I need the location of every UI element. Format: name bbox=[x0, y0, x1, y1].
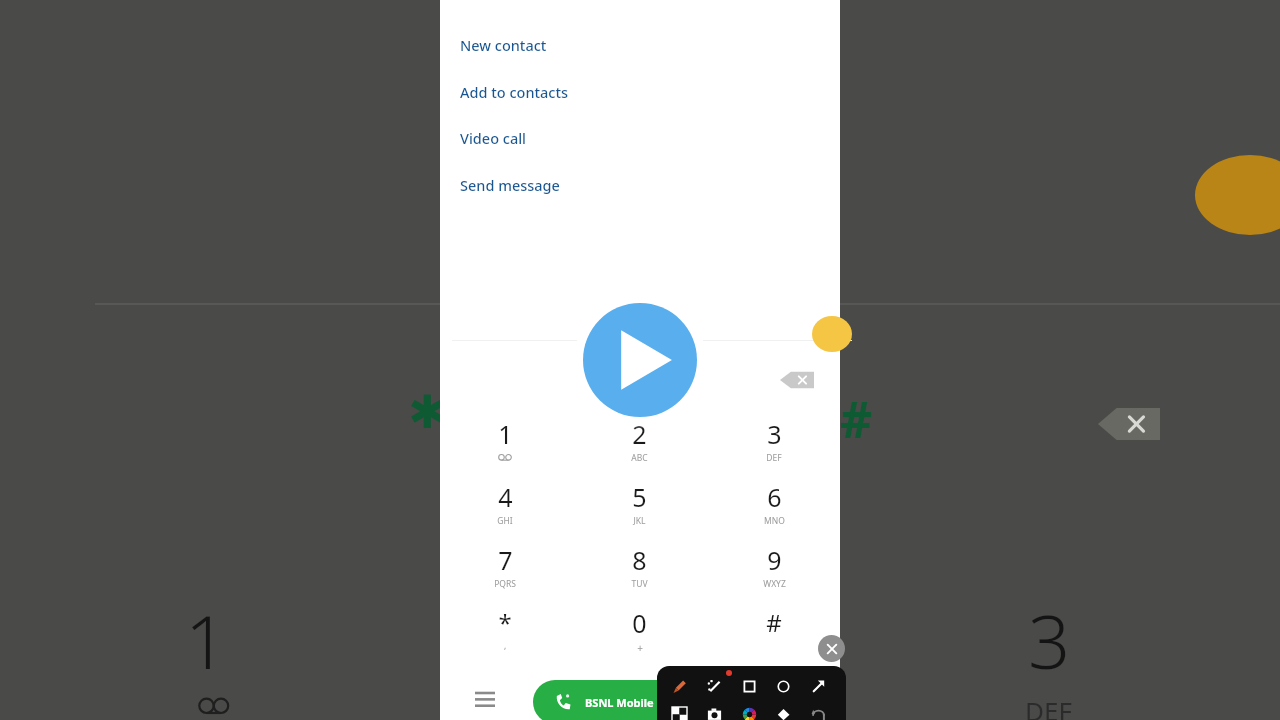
button[interactable]: 5 bbox=[583, 480, 695, 540]
staticText: 2 bbox=[632, 417, 647, 451]
button[interactable]: Send message bbox=[440, 168, 840, 202]
staticText: # bbox=[840, 385, 873, 453]
staticText: DEF bbox=[1025, 693, 1072, 720]
button[interactable]: Rectangle bbox=[738, 675, 760, 697]
button[interactable]: 4 bbox=[449, 480, 561, 540]
button[interactable]: 2 bbox=[583, 417, 695, 477]
staticText: 8 bbox=[632, 543, 647, 577]
button[interactable]: Video call bbox=[440, 121, 840, 155]
button[interactable]: Arrow bbox=[807, 675, 829, 697]
button[interactable]: 9 bbox=[718, 543, 830, 603]
staticText: 5 bbox=[632, 480, 647, 514]
button[interactable]: 3 bbox=[718, 417, 830, 477]
button[interactable]: BSNL Mobile bbox=[533, 680, 718, 720]
staticText: Send message bbox=[460, 175, 560, 195]
staticText: MNO bbox=[764, 515, 785, 527]
staticText: 1 bbox=[498, 417, 513, 451]
button[interactable]: Camera bbox=[703, 703, 725, 720]
staticText: ✱ bbox=[408, 385, 447, 439]
staticText: 7 bbox=[498, 543, 513, 577]
button[interactable]: * bbox=[449, 606, 561, 666]
button[interactable]: New contact bbox=[440, 28, 840, 62]
staticText: 4 bbox=[498, 480, 513, 514]
staticText: GHI bbox=[497, 515, 513, 527]
staticText: ABC bbox=[631, 452, 648, 464]
button[interactable]: Add to contacts bbox=[440, 75, 840, 109]
button[interactable]: Circle bbox=[772, 675, 794, 697]
button[interactable]: Close bbox=[818, 635, 845, 662]
staticText: WXYZ bbox=[763, 578, 786, 590]
staticText: 9 bbox=[767, 543, 782, 577]
staticText: + bbox=[637, 641, 643, 655]
staticText: , bbox=[504, 640, 507, 652]
button[interactable]: 8 bbox=[583, 543, 695, 603]
button[interactable]: 6 bbox=[718, 480, 830, 540]
button[interactable]: Brush bbox=[668, 675, 690, 697]
button[interactable]: Color bbox=[738, 703, 760, 720]
button[interactable]: Play bbox=[572, 292, 708, 428]
button[interactable]: Undo bbox=[807, 703, 829, 720]
staticText: BSNL Mobile bbox=[585, 695, 654, 710]
button[interactable]: Eraser bbox=[772, 703, 794, 720]
button[interactable]: Menu bbox=[468, 682, 502, 716]
staticText: 3 bbox=[1028, 590, 1071, 691]
button[interactable]: 0 bbox=[583, 606, 695, 666]
staticText: PQRS bbox=[494, 578, 516, 590]
button[interactable]: 7 bbox=[449, 543, 561, 603]
button[interactable]: Backspace bbox=[780, 367, 814, 393]
staticText: * bbox=[498, 606, 512, 639]
staticText: TUV bbox=[631, 578, 648, 590]
button[interactable]: 1 bbox=[449, 417, 561, 477]
staticText: 6 bbox=[767, 480, 782, 514]
button[interactable]: # bbox=[718, 606, 830, 666]
button[interactable]: Magic bbox=[703, 675, 725, 697]
staticText: JKL bbox=[633, 515, 646, 527]
button[interactable]: Mosaic bbox=[668, 703, 690, 720]
staticText: DEF bbox=[766, 452, 782, 464]
staticText: 0 bbox=[632, 606, 647, 640]
staticText: Add to contacts bbox=[460, 82, 569, 102]
staticText: # bbox=[766, 606, 782, 639]
staticText: 3 bbox=[767, 417, 782, 451]
staticText: New contact bbox=[460, 35, 547, 55]
staticText: 1 bbox=[185, 590, 228, 691]
staticText: Video call bbox=[460, 128, 527, 148]
